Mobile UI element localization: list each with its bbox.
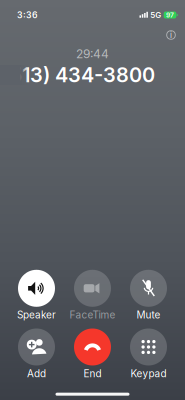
staticText: 3:36 <box>17 10 38 20</box>
staticText: Add <box>27 367 46 380</box>
button[interactable]: Add <box>18 328 55 379</box>
button[interactable]: Mute <box>130 270 167 321</box>
button[interactable]: Call info <box>162 26 180 44</box>
staticText: (513) 434-3800 <box>3 63 155 87</box>
staticText: End <box>83 367 101 380</box>
button[interactable]: FaceTime <box>74 270 111 321</box>
staticText: i <box>170 30 172 40</box>
button[interactable]: Speaker <box>18 270 55 321</box>
button[interactable]: Keypad <box>130 328 167 379</box>
staticText: 97 <box>166 11 174 19</box>
staticText: 29:44 <box>76 47 109 61</box>
staticText: FaceTime <box>69 309 115 321</box>
button[interactable]: End <box>74 328 111 379</box>
staticText: 5G <box>150 10 161 20</box>
staticText: Speaker <box>17 309 56 321</box>
staticText: Mute <box>136 309 160 321</box>
staticText: Keypad <box>130 367 166 380</box>
